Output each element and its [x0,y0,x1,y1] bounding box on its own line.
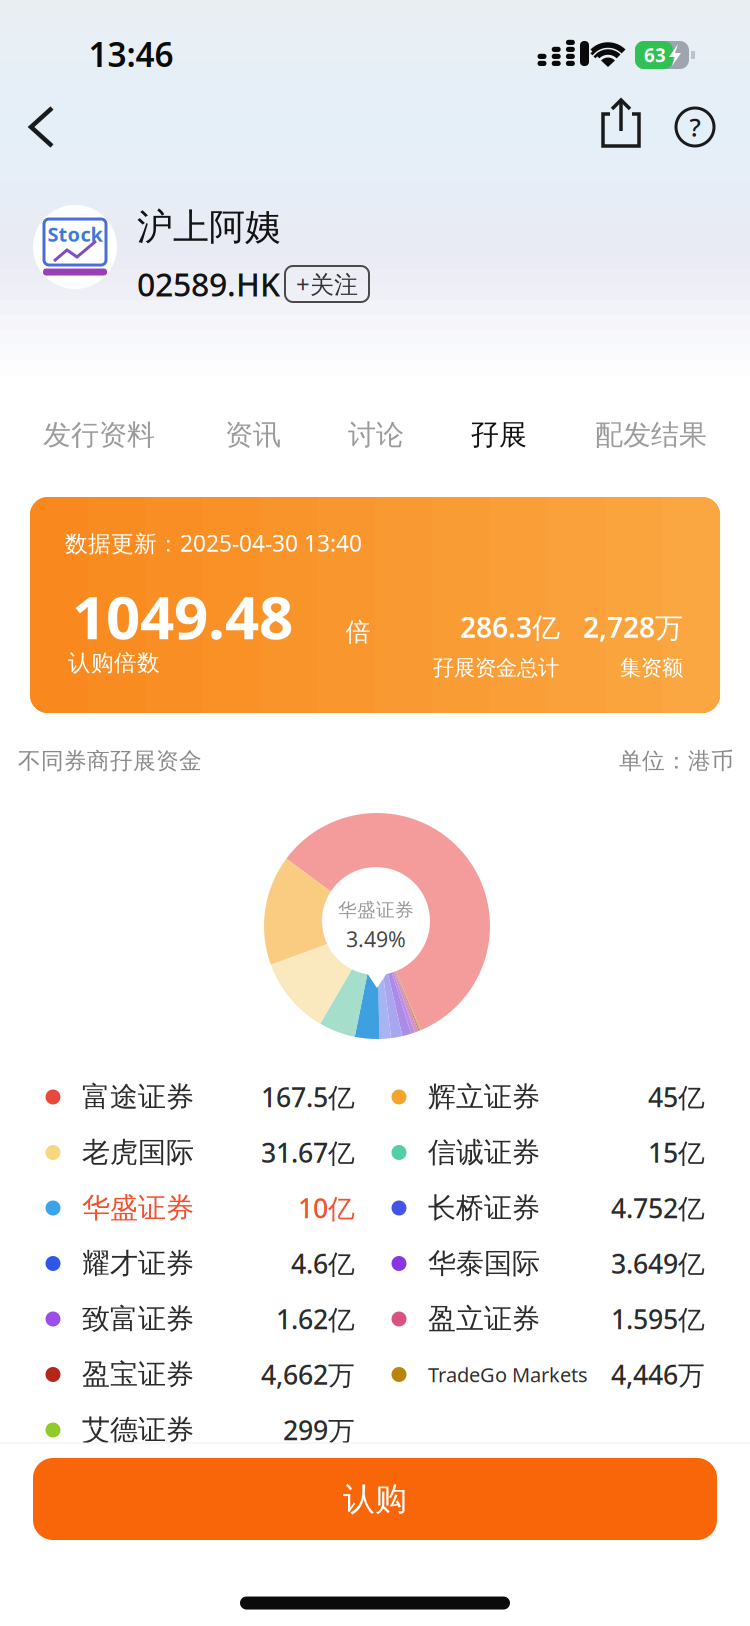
staticText: 31.67亿 [261,1135,355,1170]
staticText: Stock [47,221,102,247]
staticText: 讨论 [348,418,404,452]
staticText: 数据更新：2025-04-30 13:40 [65,528,362,558]
staticText: 15亿 [648,1135,705,1170]
staticText: 信诚证券 [428,1135,540,1170]
staticText: 致富证券 [82,1302,194,1336]
button[interactable]: 信诚证券 [372,1125,717,1179]
staticText: 认购倍数 [68,649,160,677]
button[interactable]: 配发结果 [571,410,731,460]
staticText: 2,728万 [583,608,683,646]
button[interactable]: 华盛证券 [28,1181,373,1235]
staticText: 3.49% [346,925,406,953]
button[interactable]: 辉立证券 [372,1070,717,1124]
staticText: 集资额 [620,655,683,681]
staticText: 配发结果 [595,418,707,452]
button[interactable] [0,0,750,160]
staticText: 02589.HK [137,263,280,305]
button[interactable]: +关注 [285,266,369,302]
staticText: 45亿 [648,1079,705,1115]
staticText: 286.3亿 [460,608,560,646]
staticText: 13:46 [88,32,173,76]
staticText: 资讯 [225,418,281,452]
button[interactable]: 致富证券 [28,1292,373,1346]
button[interactable]: 盈立证券 [372,1292,717,1346]
button[interactable]: 长桥证券 [372,1181,717,1235]
button[interactable] [0,0,750,160]
staticText: 10亿 [298,1190,355,1226]
staticText: 孖展 [471,418,527,452]
staticText: 倍 [345,616,370,647]
staticText: 老虎国际 [82,1135,194,1170]
staticText: 4.6亿 [291,1246,355,1281]
staticText: 299万 [283,1412,355,1448]
button[interactable]: 孖展 [419,410,579,460]
staticText: 华盛证券 [82,1191,194,1225]
staticText: 富途证券 [82,1080,194,1114]
button[interactable]: 资讯 [173,410,333,460]
button[interactable]: 华泰国际 [372,1236,717,1290]
button[interactable]: 耀才证券 [28,1236,373,1290]
button[interactable]: 认购 [33,1458,717,1540]
staticText: 认购 [343,1479,407,1519]
button[interactable]: 老虎国际 [28,1125,373,1179]
staticText: 167.5亿 [261,1079,355,1115]
staticText: 盈立证券 [428,1302,540,1336]
button[interactable]: ? [0,0,750,160]
button[interactable]: 艾德证券 [28,1403,373,1457]
staticText: 不同券商孖展资金 [18,747,202,775]
button[interactable]: 盈宝证券 [28,1347,373,1401]
staticText: +关注 [296,268,358,300]
staticText: 4,446万 [611,1357,705,1392]
staticText: 长桥证券 [428,1191,540,1225]
staticText: 发行资料 [43,418,155,452]
staticText: ? [689,110,700,144]
staticText: 单位：港币 [619,747,734,775]
staticText: TradeGo Markets [428,1361,588,1388]
staticText: 63 [644,43,666,67]
staticText: 3.649亿 [611,1246,705,1281]
staticText: 1049.48 [72,576,293,656]
button[interactable]: 讨论 [296,410,456,460]
staticText: 辉立证券 [428,1080,540,1114]
staticText: 华盛证券 [338,898,414,921]
staticText: 华泰国际 [428,1246,540,1281]
staticText: 1.62亿 [276,1301,355,1337]
button[interactable]: TradeGo Markets [372,1347,717,1401]
staticText: 盈宝证券 [82,1357,194,1392]
staticText: 耀才证券 [82,1246,194,1281]
staticText: 4,662万 [261,1357,355,1392]
staticText: 孖展资金总计 [433,655,559,681]
staticText: 1.595亿 [611,1301,705,1337]
staticText: 艾德证券 [82,1413,194,1447]
button[interactable]: 富途证券 [28,1070,373,1124]
staticText: 沪上阿姨 [137,205,281,249]
button[interactable]: 发行资料 [19,410,179,460]
staticText: 4.752亿 [611,1190,705,1226]
